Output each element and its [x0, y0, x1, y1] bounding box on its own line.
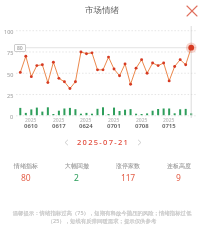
button[interactable]: 大幅回撤 — [51, 162, 102, 184]
button[interactable]: Next day — [132, 135, 146, 149]
staticText: 2025 — [136, 117, 148, 124]
staticText: 0617 — [52, 122, 66, 130]
staticText: 2 — [74, 172, 79, 184]
staticText: 0701 — [107, 122, 121, 130]
staticText: 0 — [10, 113, 14, 120]
button[interactable]: Close — [183, 2, 201, 20]
staticText: 市场情绪 — [85, 5, 119, 16]
staticText: 2025 — [25, 117, 37, 124]
staticText: 50 — [7, 71, 14, 78]
staticText: 100 — [4, 28, 14, 35]
button[interactable]: 涨停家数 — [102, 162, 153, 184]
staticText: 80 — [17, 45, 23, 52]
staticText: 连板高度 — [167, 162, 191, 170]
staticText: 117 — [121, 172, 135, 184]
staticText: 0715 — [162, 122, 176, 130]
staticText: 0708 — [135, 122, 149, 130]
staticText: 大幅回撤 — [65, 162, 89, 170]
staticText: 2025 — [53, 117, 65, 124]
staticText: 2025 — [108, 117, 120, 124]
staticText: 0610 — [24, 122, 38, 130]
staticText: 温馨提示：情绪指标过高（75），短期有释放今抛压的风险；情绪指标过低（25），短… — [5, 209, 199, 225]
button[interactable]: 连板高度 — [153, 162, 204, 184]
button[interactable]: 情绪指标 — [0, 162, 51, 184]
staticText: 2025 — [80, 117, 92, 124]
staticText: 80 — [21, 172, 31, 184]
staticText: 75 — [7, 49, 14, 56]
button[interactable]: Previous day — [59, 135, 73, 149]
staticText: 25 — [7, 92, 14, 99]
staticText: 涨停家数 — [116, 162, 140, 170]
staticText: 2025-07-21 — [77, 137, 130, 147]
staticText: 2025 — [163, 117, 175, 124]
staticText: 0624 — [79, 122, 93, 130]
staticText: 情绪指标 — [14, 162, 38, 170]
staticText: 9 — [176, 172, 181, 184]
